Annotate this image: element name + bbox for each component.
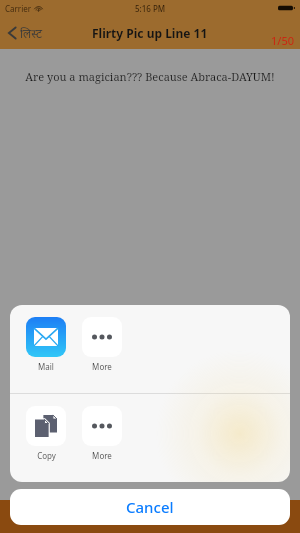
staticText: 5:16 PM xyxy=(135,3,166,14)
staticText: Flirty Pic up Line 11 xyxy=(92,25,208,41)
button[interactable]: Favorite xyxy=(137,504,163,530)
button[interactable]: Copy xyxy=(26,406,66,461)
button[interactable]: लिस्ट xyxy=(4,21,46,45)
button[interactable]: Next xyxy=(256,504,282,530)
staticText: लिस्ट xyxy=(20,25,42,41)
staticText: Carrier xyxy=(5,3,32,14)
staticText: Cancel xyxy=(126,497,174,517)
staticText: Mail xyxy=(38,361,54,372)
button[interactable]: Cancel xyxy=(10,489,290,525)
staticText: More xyxy=(92,450,112,461)
staticText: More xyxy=(92,361,112,372)
button[interactable]: Previous xyxy=(18,504,44,530)
button[interactable]: More xyxy=(82,317,122,372)
button[interactable]: Mail xyxy=(26,317,66,372)
button[interactable]: More xyxy=(82,406,122,461)
staticText: Copy xyxy=(37,450,56,461)
staticText: 1/50 xyxy=(271,33,294,48)
staticText: Are you a magician??? Because Abraca-DAY… xyxy=(10,69,290,84)
